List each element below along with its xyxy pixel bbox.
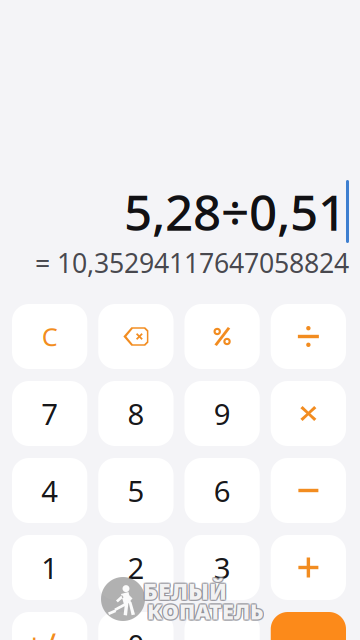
button[interactable]: 8 <box>98 381 173 446</box>
staticText: БЕЛЫЙ <box>143 576 227 606</box>
staticText: БЕЛЫЙ <box>144 577 228 607</box>
button[interactable]: 1 <box>12 535 87 600</box>
staticText: 2 <box>127 548 144 587</box>
button[interactable]: , <box>184 612 260 640</box>
staticText: КОПАТЕЛЬ <box>146 596 262 624</box>
staticText: БЕЛЫЙ <box>142 577 226 607</box>
staticText: БЕЛЫЙ <box>143 575 227 605</box>
staticText: 4 <box>41 471 58 510</box>
button[interactable]: 4 <box>12 458 87 523</box>
staticText: КОПАТЕЛЬ <box>148 596 264 624</box>
staticText: КОПАТЕЛЬ <box>146 598 262 626</box>
staticText: 5,28÷0,51 <box>124 179 346 244</box>
staticText: БЕЛЫЙ <box>142 575 226 605</box>
button[interactable]: C <box>12 304 87 369</box>
staticText: 1 <box>41 548 58 587</box>
button[interactable]: Minus <box>271 458 346 523</box>
staticText: КОПАТЕЛЬ <box>146 597 262 625</box>
button[interactable]: 2 <box>98 535 173 600</box>
button[interactable]: +/− <box>12 612 87 640</box>
staticText: +/− <box>25 622 75 640</box>
staticText: 5 <box>127 471 144 510</box>
staticText: КОПАТЕЛЬ <box>148 598 264 626</box>
button[interactable]: 7 <box>12 381 87 446</box>
staticText: КОПАТЕЛЬ <box>147 598 263 626</box>
button[interactable]: Divide <box>271 304 346 369</box>
staticText: КОПАТЕЛЬ <box>147 596 263 624</box>
button[interactable]: 3 <box>184 535 260 600</box>
staticText: БЕЛЫЙ <box>144 575 228 605</box>
button[interactable]: 5 <box>98 458 173 523</box>
staticText: C <box>42 320 58 353</box>
staticText: БЕЛЫЙ <box>142 576 226 606</box>
button[interactable]: Backspace <box>98 304 173 369</box>
staticText: 6 <box>214 471 231 510</box>
button[interactable]: Percent <box>184 304 260 369</box>
button[interactable]: Multiply <box>271 381 346 446</box>
staticText: = 10,35294117647058824 <box>35 245 349 280</box>
button[interactable]: 9 <box>184 381 260 446</box>
staticText: БЕЛЫЙ <box>143 577 227 607</box>
staticText: БЕЛЫЙ <box>144 576 228 606</box>
staticText: 0 <box>127 625 144 640</box>
staticText: КОПАТЕЛЬ <box>148 597 264 625</box>
button[interactable]: 6 <box>184 458 260 523</box>
button[interactable]: Plus <box>271 535 346 600</box>
staticText: 9 <box>214 394 231 433</box>
staticText: КОПАТЕЛЬ <box>147 597 263 625</box>
staticText: 3 <box>214 548 231 587</box>
button[interactable]: = <box>271 612 346 640</box>
staticText: 8 <box>127 394 144 433</box>
staticText: 7 <box>41 394 58 433</box>
button[interactable]: 0 <box>98 612 173 640</box>
